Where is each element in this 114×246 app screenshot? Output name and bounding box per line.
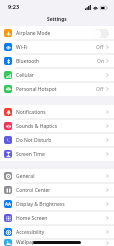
button[interactable]: Do Not Disturb [0,133,114,147]
staticText: Notifications [16,109,46,116]
staticText: Do Not Disturb [16,137,52,144]
staticText: Display & Brightness [16,201,65,208]
button[interactable]: Home Screen [0,211,114,225]
button[interactable]: Sounds & Haptics [0,119,114,133]
staticText: AA [5,201,12,207]
staticText: Control Center [16,187,51,194]
staticText: On [97,58,104,65]
button[interactable]: AA [0,197,114,211]
staticText: Cellular [16,72,34,79]
button[interactable]: Airplane Mode toggle [93,29,109,38]
staticText: Off [96,44,104,51]
button[interactable]: Cellular [0,68,114,82]
button[interactable]: Wi-Fi [0,40,114,54]
button[interactable]: Wallpaper [0,239,114,246]
button[interactable]: Notifications [0,105,114,119]
button[interactable]: Personal Hotspot [0,82,114,96]
button[interactable]: Airplane Mode [0,26,114,40]
staticText: General [16,173,35,180]
button[interactable]: Bluetooth [0,54,114,68]
staticText: Wallpaper [16,239,40,246]
staticText: Screen Time [16,151,45,158]
button[interactable]: Screen Time [0,147,114,161]
staticText: Settings [47,16,67,23]
staticText: Airplane Mode [16,30,51,37]
staticText: Bluetooth [16,58,40,65]
button[interactable]: Control Center [0,183,114,197]
staticText: Personal Hotspot [16,86,57,93]
staticText: 9:23 [8,3,20,11]
staticText: Home Screen [16,215,48,222]
staticText: Wi-Fi [16,44,28,51]
button[interactable]: General [0,169,114,183]
button[interactable]: Accessibility [0,225,114,239]
staticText: Sounds & Haptics [16,123,58,130]
staticText: Accessibility [16,229,45,236]
staticText: Off [96,86,104,93]
